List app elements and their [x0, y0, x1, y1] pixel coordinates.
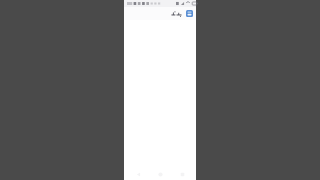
- button[interactable]: Title: [170, 9, 183, 19]
- button[interactable]: Open: [185, 9, 194, 18]
